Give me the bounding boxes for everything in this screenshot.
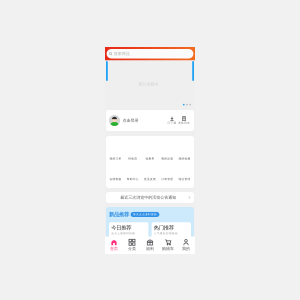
button[interactable]: 浏览历史 — [178, 116, 190, 125]
button[interactable]: 意见反馈 — [141, 175, 159, 182]
staticText: 优惠券 — [145, 157, 154, 160]
button[interactable]: 我的足迹 — [159, 155, 176, 162]
button[interactable]: 优惠券 — [141, 155, 159, 162]
staticText: 人气爆款好物精选 — [154, 232, 178, 235]
staticText: 搜索商品 — [114, 51, 130, 56]
staticText: 全天上新限时抢购 — [111, 232, 135, 235]
staticText: 我的 — [182, 246, 190, 251]
button[interactable]: 热门推荐 — [152, 222, 191, 239]
staticText: 新品推荐 — [109, 211, 129, 218]
button[interactable]: 订单管理 — [159, 175, 176, 182]
staticText: 我的订单 — [110, 157, 122, 160]
staticText: 分类 — [128, 246, 136, 251]
staticText: 待收货 — [128, 157, 137, 160]
staticText: 最近三次浏览中的活动公告通知 — [120, 195, 176, 200]
staticText: 首页 — [110, 246, 118, 251]
staticText: 意见反馈 — [144, 177, 156, 181]
button[interactable]: 已下载 — [166, 116, 178, 125]
button[interactable]: 分类 — [123, 237, 141, 253]
staticText: 我的收藏 — [178, 157, 190, 160]
button[interactable]: 最近三次浏览中的活动公告通知 — [106, 192, 194, 203]
staticText: 图片加载中... — [138, 81, 161, 87]
button[interactable]: 福利 — [141, 237, 159, 253]
button[interactable]: 帮助中心 — [124, 175, 141, 182]
staticText: 已下载 — [167, 121, 176, 125]
button[interactable]: 我的订单 — [107, 155, 124, 162]
staticText: 浏览历史 — [178, 121, 190, 125]
staticText: 今日推荐 — [111, 224, 131, 231]
button[interactable]: 点击登录 — [109, 115, 139, 126]
button[interactable]: 购物车 — [159, 237, 177, 253]
button[interactable]: 我的 — [177, 237, 195, 253]
button[interactable]: 搜索商品 — [107, 49, 193, 58]
staticText: 福利 — [146, 246, 154, 251]
staticText: 订单管理 — [161, 177, 173, 181]
button[interactable]: 待收货 — [124, 155, 141, 162]
staticText: 在线客服 — [110, 177, 122, 181]
staticText: 点击登录 — [123, 118, 139, 123]
button[interactable]: 地址管理 — [176, 175, 193, 182]
button[interactable]: 在线客服 — [107, 175, 124, 182]
staticText: 我的足迹 — [161, 157, 173, 160]
staticText: 地址管理 — [178, 177, 190, 181]
button[interactable]: 今日推荐 — [109, 222, 148, 239]
staticText: 购物车 — [162, 246, 174, 251]
button[interactable]: 首页 — [105, 237, 123, 253]
staticText: 热门推荐 — [154, 224, 174, 231]
staticText: 帮助中心 — [127, 177, 139, 181]
button[interactable]: 我的收藏 — [176, 155, 193, 162]
staticText: 每天五点准时更新 — [133, 213, 157, 216]
